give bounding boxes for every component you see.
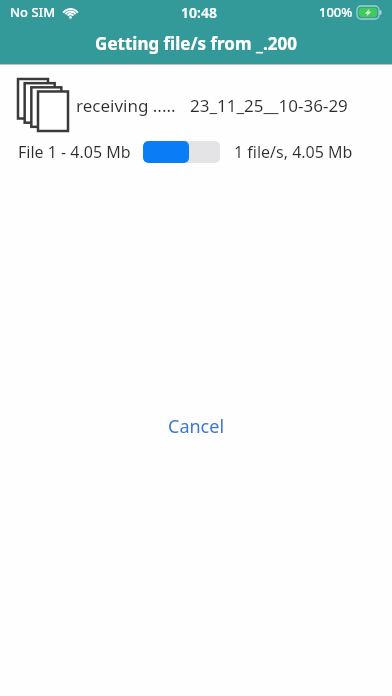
button[interactable]: Cancel: [144, 406, 249, 447]
staticText: 100%: [319, 3, 353, 21]
other: Wi-Fi: [62, 6, 79, 19]
staticText: receiving .....: [76, 94, 176, 117]
staticText: 10:48: [181, 3, 217, 22]
staticText: 1 file/s, 4.05 Mb: [234, 141, 353, 163]
staticText: No SIM: [10, 3, 56, 21]
staticText: 23_11_25__10-36-29: [190, 94, 348, 117]
other: Battery full, charging: [357, 6, 382, 19]
staticText: File 1 - 4.05 Mb: [18, 141, 131, 163]
staticText: Getting file/s from _.200: [95, 32, 297, 55]
staticText: Cancel: [168, 414, 225, 439]
